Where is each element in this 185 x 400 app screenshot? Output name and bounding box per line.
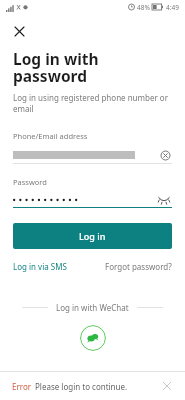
button[interactable]: Clear text: [13, 147, 172, 163]
staticText: Forgot password?: [105, 261, 172, 272]
button[interactable]: Close: [8, 20, 30, 42]
staticText: Log in with WeChat: [56, 302, 129, 313]
staticText: Error: [12, 381, 32, 392]
staticText: 48%: [137, 3, 150, 12]
staticText: 4:49: [166, 3, 179, 12]
staticText: Log in using registered phone number or …: [13, 92, 169, 115]
button[interactable]: Log in via SMS: [13, 259, 67, 274]
staticText: Password: [13, 177, 47, 187]
staticText: Please login to continue.: [35, 381, 128, 392]
button[interactable]: Log in: [13, 223, 172, 249]
button[interactable]: Show password: [156, 192, 172, 207]
button[interactable]: Show password: [13, 192, 172, 207]
button[interactable]: Log in with WeChat: [80, 325, 106, 351]
staticText: Phone/Email address: [13, 131, 88, 141]
button[interactable]: Clear text: [158, 148, 172, 162]
button[interactable]: Forgot password?: [105, 259, 172, 274]
staticText: Log in: [79, 230, 106, 242]
staticText: Log in via SMS: [13, 261, 67, 272]
staticText: Log in with password: [13, 48, 175, 87]
button[interactable]: Dismiss error: [159, 378, 175, 394]
